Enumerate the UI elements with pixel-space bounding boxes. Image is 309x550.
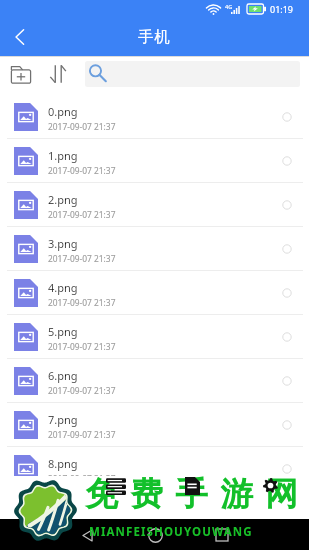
staticText: 7.png <box>48 412 78 427</box>
staticText: 免费手游网 <box>79 474 304 515</box>
button[interactable]: Recent apps <box>207 520 237 550</box>
button[interactable]: 6.png <box>0 359 309 402</box>
button[interactable]: Settings <box>249 476 292 519</box>
button[interactable]: Select 6.png <box>274 368 300 394</box>
staticText: 2017-09-07 21:37 <box>48 385 116 396</box>
staticText: 0.png <box>48 104 78 119</box>
button[interactable]: Select 5.png <box>274 324 300 350</box>
staticText: 5.png <box>48 324 78 339</box>
button[interactable]: 0.png <box>0 95 309 138</box>
button[interactable]: Back <box>0 18 40 56</box>
button[interactable]: Back <box>72 520 102 550</box>
staticText: 2017-09-07 21:37 <box>48 473 116 484</box>
staticText: 6.png <box>48 368 78 383</box>
staticText: 1.png <box>48 148 78 163</box>
staticText: 手机 <box>138 27 171 47</box>
staticText: 2.png <box>48 192 78 207</box>
button[interactable]: Select 4.png <box>274 280 300 306</box>
staticText: MIANFEISHOUYOUWANG <box>89 524 253 540</box>
staticText: 2017-09-07 21:37 <box>48 253 116 264</box>
button[interactable]: 7.png <box>0 403 309 446</box>
button[interactable]: 5.png <box>0 315 309 358</box>
button[interactable]: Select 0.png <box>274 104 300 130</box>
staticText: 2017-09-07 21:37 <box>48 165 116 176</box>
button[interactable]: Select 1.png <box>274 148 300 174</box>
button[interactable]: Files <box>171 476 214 519</box>
staticText: 2017-09-07 21:37 <box>48 341 116 352</box>
staticText: 4G <box>225 3 233 10</box>
button[interactable]: Select 8.png <box>274 456 300 482</box>
button[interactable]: 3.png <box>0 227 309 270</box>
button[interactable]: Select 2.png <box>274 192 300 218</box>
button[interactable]: Select 7.png <box>274 412 300 438</box>
staticText: 01:19 <box>270 3 294 15</box>
button[interactable]: List view <box>92 476 140 519</box>
button[interactable]: 1.png <box>0 139 309 182</box>
button[interactable]: 2.png <box>0 183 309 226</box>
staticText: 2017-09-07 21:37 <box>48 297 116 308</box>
button[interactable]: 8.png <box>0 447 309 490</box>
staticText: 2017-09-07 21:37 <box>48 121 116 132</box>
button[interactable]: Home <box>140 520 170 550</box>
staticText: 2017-09-07 21:37 <box>48 209 116 220</box>
button[interactable]: New folder <box>2 55 40 93</box>
staticText: 8.png <box>48 456 78 471</box>
staticText: 2017-09-07 21:37 <box>48 429 116 440</box>
button[interactable]: Search <box>85 61 300 87</box>
staticText: 4.png <box>48 280 78 295</box>
staticText: 3.png <box>48 236 78 251</box>
button[interactable]: Sort <box>41 55 75 93</box>
button[interactable]: Select 3.png <box>274 236 300 262</box>
button[interactable]: 4.png <box>0 271 309 314</box>
